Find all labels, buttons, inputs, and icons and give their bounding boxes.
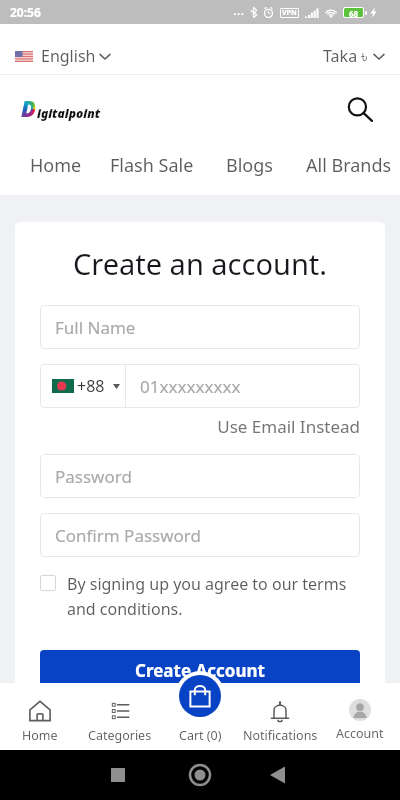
button[interactable]: All Brands: [306, 153, 392, 178]
staticText: Cart (0): [179, 727, 222, 744]
staticText: Account: [336, 725, 384, 742]
button[interactable]: Flash Sale: [110, 153, 194, 178]
staticText: All Brands: [306, 153, 392, 178]
button[interactable]: Notifications: [240, 683, 320, 744]
staticText: By signing up you agree to our terms and…: [67, 573, 360, 619]
staticText: Flash Sale: [110, 153, 194, 178]
staticText: +88: [77, 375, 105, 397]
button[interactable]: Home: [0, 683, 80, 744]
staticText: Create Account: [135, 659, 265, 682]
staticText: Categories: [88, 727, 152, 744]
staticText: 01xxxxxxxxx: [140, 375, 241, 398]
button[interactable]: Blogs: [226, 153, 273, 178]
button[interactable]: Password: [40, 454, 360, 498]
button[interactable]: Create Account: [40, 650, 360, 691]
button[interactable]: Cart (0): [160, 683, 240, 744]
button[interactable]: Use Email Instead: [40, 415, 360, 438]
button[interactable]: Confirm Password: [40, 513, 360, 557]
staticText: igitalpoint: [37, 105, 101, 121]
staticText: Full Name: [55, 316, 136, 339]
button[interactable]: Categories: [80, 683, 160, 744]
staticText: Blogs: [226, 153, 273, 178]
staticText: English: [41, 45, 96, 67]
staticText: 20:56: [10, 4, 41, 20]
button[interactable]: Account: [320, 683, 400, 742]
button[interactable]: Cart: [179, 675, 221, 717]
button[interactable]: Taka ৳: [323, 45, 384, 67]
staticText: VPN: [282, 8, 297, 18]
staticText: Notifications: [243, 727, 318, 744]
staticText: Taka ৳: [323, 45, 368, 67]
staticText: 68: [349, 8, 359, 17]
button[interactable]: English: [15, 45, 110, 67]
button[interactable]: +88: [40, 364, 125, 408]
button[interactable]: By signing up you agree to our terms and…: [40, 573, 360, 619]
staticText: Home: [22, 727, 58, 744]
staticText: D: [21, 93, 37, 123]
staticText: Password: [55, 465, 132, 488]
button[interactable]: Search: [346, 96, 374, 124]
staticText: Create an account.: [40, 244, 360, 283]
button[interactable]: Full Name: [40, 305, 360, 349]
staticText: Home: [30, 153, 82, 178]
staticText: Confirm Password: [55, 524, 201, 547]
button[interactable]: Home: [30, 153, 82, 178]
